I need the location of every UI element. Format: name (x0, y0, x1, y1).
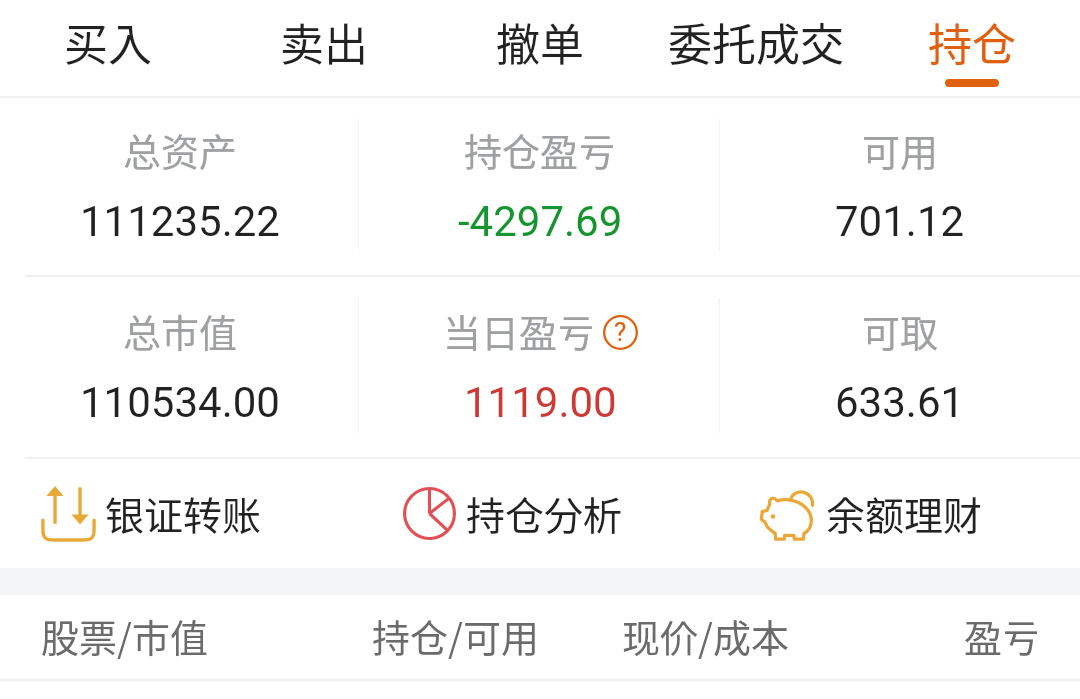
staticText: 111235.22 (80, 197, 280, 246)
button[interactable]: 委托成交 (648, 0, 864, 96)
button[interactable]: 总市值 (0, 274, 360, 455)
staticText: 1119.00 (464, 378, 617, 427)
button[interactable]: 持仓分析 (403, 458, 623, 568)
button[interactable]: 现价/成本 (622, 595, 872, 676)
staticText: ? (614, 317, 627, 347)
staticText: 持仓盈亏 (464, 122, 617, 177)
staticText: 当日盈亏 (443, 303, 596, 358)
staticText: 633.61 (835, 378, 965, 427)
button[interactable]: 银证转账 (41, 458, 262, 568)
button[interactable]: 当日盈亏 (360, 274, 720, 455)
staticText: 持仓 (928, 10, 1016, 74)
staticText: 可用 (862, 122, 939, 177)
button[interactable]: 买入 (0, 0, 216, 96)
staticText: 撤单 (496, 10, 584, 74)
button[interactable]: 余额理财 (760, 458, 983, 568)
button[interactable]: 当日盈亏说明 (603, 315, 638, 350)
staticText: 110534.00 (80, 378, 280, 427)
button[interactable]: 持仓/可用 (372, 595, 622, 676)
staticText: 卖出 (280, 10, 368, 74)
button[interactable]: 股票/市值 (41, 595, 372, 676)
other: 银证转账 (41, 486, 96, 540)
staticText: 总资产 (123, 122, 238, 177)
button[interactable]: 持仓 (864, 0, 1080, 96)
button[interactable]: 卖出 (216, 0, 432, 96)
other: 余额理财 (760, 486, 815, 540)
staticText: 委托成交 (668, 10, 844, 74)
button[interactable]: 盈亏 (872, 595, 1041, 676)
staticText: 持仓分析 (466, 485, 623, 541)
staticText: 余额理财 (826, 485, 983, 541)
staticText: 总市值 (123, 303, 238, 358)
staticText: 701.12 (835, 197, 965, 246)
staticText: 盈亏 (964, 608, 1041, 663)
other: 持仓分析 (403, 487, 456, 540)
staticText: 买入 (64, 10, 152, 74)
button[interactable]: 持仓盈亏 (360, 95, 720, 273)
staticText: 股票/市值 (41, 608, 208, 663)
staticText: -4297.69 (458, 197, 623, 246)
staticText: 可取 (862, 303, 939, 358)
staticText: 持仓/可用 (372, 608, 539, 663)
button[interactable]: 可取 (720, 274, 1080, 455)
staticText: 银证转账 (105, 485, 262, 541)
button[interactable]: 总资产 (0, 95, 360, 273)
button[interactable]: 撤单 (432, 0, 648, 96)
button[interactable]: 可用 (720, 95, 1080, 273)
staticText: 现价/成本 (622, 608, 789, 663)
